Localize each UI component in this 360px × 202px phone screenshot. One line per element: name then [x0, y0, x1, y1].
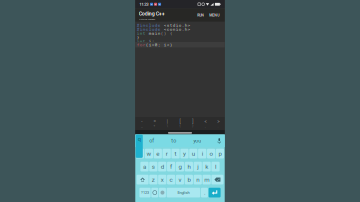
button[interactable]: = [148, 117, 161, 130]
button[interactable]: m [202, 175, 211, 184]
button[interactable]: ] [186, 117, 199, 130]
button[interactable]: | [161, 117, 174, 130]
button[interactable]: u [189, 149, 197, 158]
button[interactable]: Backspace [211, 175, 223, 184]
staticText: . [204, 189, 205, 196]
button[interactable]: RUN [195, 10, 207, 20]
staticText: h [187, 163, 190, 170]
staticText: RUN [197, 13, 204, 17]
staticText: x [161, 176, 164, 183]
staticText: | [167, 119, 168, 124]
button[interactable]: i [198, 149, 206, 158]
staticText: English [177, 190, 189, 195]
staticText: main [146, 30, 161, 36]
button[interactable]: l [211, 162, 220, 171]
staticText: n [196, 176, 199, 183]
staticText: o [210, 150, 213, 157]
staticText: } [137, 34, 140, 40]
staticText: = [153, 119, 155, 124]
button[interactable]: v [176, 175, 184, 184]
staticText: d [161, 163, 164, 170]
button[interactable]: ?123 [139, 188, 151, 197]
staticText: z [152, 176, 155, 183]
button[interactable]: n [194, 175, 202, 184]
staticText: l [215, 163, 216, 170]
button[interactable]: . [201, 188, 208, 197]
staticText: (i=0; i<) [146, 42, 173, 47]
button[interactable]: [ [174, 117, 186, 130]
staticText: Nothing changed [139, 18, 155, 21]
button[interactable]: h [185, 162, 193, 171]
button[interactable]: Keyboard option [151, 188, 158, 197]
button[interactable]: of [146, 134, 157, 147]
staticText: f [170, 163, 172, 170]
staticText: m [204, 176, 209, 183]
button[interactable]: Shift [137, 175, 149, 184]
button[interactable]: - [135, 117, 148, 130]
button[interactable]: Voice input [215, 134, 223, 147]
staticText: #include [137, 22, 161, 28]
staticText: u [192, 150, 195, 157]
button[interactable]: z [149, 175, 157, 184]
staticText: you [193, 138, 201, 144]
staticText: , [205, 125, 206, 128]
staticText: Coding C++ [139, 10, 165, 17]
staticText: a [143, 163, 146, 170]
button[interactable]: w [145, 149, 153, 158]
staticText: int [137, 38, 146, 44]
button[interactable]: j [194, 162, 202, 171]
staticText: j [197, 163, 198, 170]
button[interactable]: Return [209, 188, 221, 197]
button[interactable]: e [154, 149, 162, 158]
button[interactable]: t [171, 149, 180, 158]
staticText: w [146, 150, 151, 157]
button[interactable]: k [202, 162, 211, 171]
staticText: c [170, 176, 173, 183]
button[interactable]: MENU [207, 10, 222, 20]
staticText: q [138, 136, 141, 142]
button[interactable]: English [167, 188, 200, 197]
staticText: _ [141, 125, 142, 128]
staticText: #include [137, 26, 161, 32]
staticText: - [141, 119, 142, 124]
staticText: b [187, 176, 190, 183]
button[interactable]: d [158, 162, 166, 171]
staticText: g [178, 163, 181, 170]
button[interactable]: r [163, 149, 171, 158]
staticText: of [149, 138, 154, 144]
staticText: () { [161, 30, 173, 36]
button[interactable]: o [207, 149, 215, 158]
staticText: + [153, 125, 155, 128]
button[interactable]: to [168, 134, 179, 147]
staticText: < [205, 119, 207, 124]
button[interactable]: q [136, 149, 144, 158]
staticText: v [178, 176, 181, 183]
staticText: \ [167, 125, 168, 128]
staticText: p [218, 150, 221, 157]
button[interactable]: x [158, 175, 166, 184]
button[interactable]: Keyboard option [159, 188, 166, 197]
staticText: s [152, 163, 155, 170]
button[interactable]: > [212, 117, 225, 130]
staticText: y [183, 150, 186, 157]
button[interactable]: f [167, 162, 175, 171]
staticText: k [205, 163, 208, 170]
button[interactable]: a [140, 162, 149, 171]
button[interactable]: s [149, 162, 157, 171]
button[interactable]: g [176, 162, 184, 171]
staticText: ?123 [141, 190, 149, 195]
button[interactable]: p [216, 149, 224, 158]
staticText: r [166, 150, 168, 157]
button[interactable]: you [190, 134, 204, 147]
button[interactable]: y [180, 149, 188, 158]
staticText: ] [192, 119, 193, 124]
button[interactable]: < [199, 117, 212, 130]
button[interactable]: c [167, 175, 175, 184]
staticText: <stdio.h> [161, 22, 191, 28]
staticText: <conio.h> [161, 26, 191, 32]
button[interactable]: b [185, 175, 193, 184]
staticText: for [137, 42, 146, 47]
staticText: e [156, 150, 159, 157]
staticText: MENU [209, 13, 219, 17]
